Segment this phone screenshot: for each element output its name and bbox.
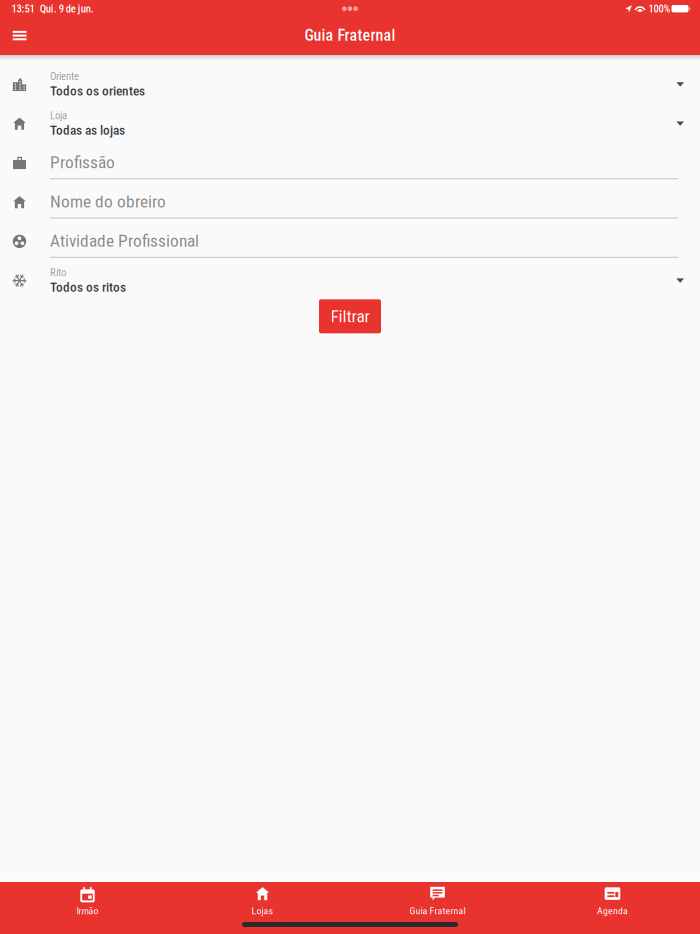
staticText: Lojas xyxy=(251,905,273,917)
staticText: 100% xyxy=(648,2,670,15)
button[interactable]: Filtrar xyxy=(319,299,381,333)
button[interactable]: Lojas xyxy=(175,882,350,934)
staticText: Rito xyxy=(50,266,66,279)
staticText: Todas as lojas xyxy=(50,122,125,138)
button[interactable]: Guia Fraternal xyxy=(350,882,525,934)
staticText: Agenda xyxy=(597,905,628,917)
staticText: Guia Fraternal xyxy=(409,905,465,917)
staticText: Todos os ritos xyxy=(50,279,126,295)
staticText: Qui. 9 de jun. xyxy=(40,2,94,15)
staticText: Oriente xyxy=(50,70,79,83)
staticText: Guia Fraternal xyxy=(304,26,395,45)
staticText: Profissão xyxy=(50,152,115,172)
staticText: Filtrar xyxy=(330,306,369,326)
staticText: 13:51 xyxy=(11,2,34,15)
button[interactable]: Menu xyxy=(3,19,37,53)
button[interactable]: Irmão xyxy=(0,882,175,934)
button[interactable]: Agenda xyxy=(525,882,700,934)
staticText: Loja xyxy=(50,109,67,122)
staticText: Nome do obreiro xyxy=(50,191,166,212)
staticText: Todos os orientes xyxy=(50,83,145,99)
staticText: Atividade Profissional xyxy=(50,231,199,251)
staticText: Irmão xyxy=(76,905,98,917)
